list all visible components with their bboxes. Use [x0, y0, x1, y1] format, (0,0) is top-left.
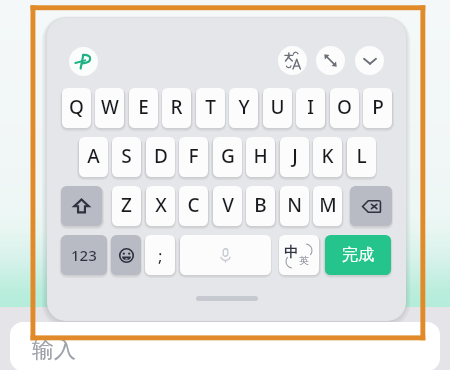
staticText: N	[287, 192, 302, 218]
button[interactable]: Resize keyboard	[316, 46, 345, 75]
staticText: T	[205, 94, 216, 120]
button[interactable]: S	[112, 137, 141, 177]
staticText: 123	[71, 245, 97, 265]
button[interactable]: N	[280, 186, 309, 226]
button[interactable]: L	[347, 137, 376, 177]
staticText: E	[138, 94, 149, 120]
staticText: C	[187, 192, 200, 218]
staticText: 完成	[342, 245, 374, 265]
button[interactable]: Hide keyboard	[355, 46, 384, 75]
staticText: D	[154, 143, 168, 169]
staticText: X	[155, 192, 167, 218]
button[interactable]: 输入	[10, 322, 440, 370]
button[interactable]: Q	[62, 88, 91, 128]
button[interactable]: G	[213, 137, 242, 177]
staticText: 英	[299, 254, 309, 267]
button[interactable]: J	[280, 137, 309, 177]
staticText: Z	[121, 192, 132, 218]
button[interactable]: D	[146, 137, 175, 177]
staticText: H	[253, 143, 268, 169]
button[interactable]: O	[330, 88, 359, 128]
staticText: Q	[69, 94, 84, 120]
button[interactable]: M	[313, 186, 342, 226]
button[interactable]: Backspace	[350, 186, 392, 226]
staticText: P	[372, 94, 384, 120]
button[interactable]: ;	[145, 235, 175, 275]
button[interactable]: Translate	[278, 46, 307, 75]
button[interactable]: F	[179, 137, 208, 177]
staticText: ;	[158, 244, 163, 267]
button[interactable]: Switch Chinese English	[279, 235, 319, 275]
staticText: W	[101, 94, 119, 120]
button[interactable]: 完成	[325, 235, 391, 275]
button[interactable]: Y	[229, 88, 258, 128]
staticText: I	[307, 94, 314, 120]
button[interactable]: Space	[180, 235, 271, 275]
staticText: G	[221, 143, 235, 169]
button[interactable]: I	[296, 88, 325, 128]
staticText: K	[321, 143, 334, 169]
button[interactable]: T	[196, 88, 225, 128]
staticText: R	[170, 94, 183, 120]
button[interactable]: V	[213, 186, 242, 226]
staticText: V	[222, 192, 234, 218]
staticText: M	[319, 192, 337, 218]
staticText: 中	[284, 244, 298, 262]
button[interactable]: Shift	[61, 186, 102, 226]
staticText: U	[270, 94, 285, 120]
staticText: O	[337, 94, 352, 120]
staticText: F	[188, 143, 199, 169]
button[interactable]: U	[263, 88, 292, 128]
staticText: Y	[238, 94, 250, 120]
button[interactable]: X	[146, 186, 175, 226]
button[interactable]: R	[162, 88, 191, 128]
button[interactable]: E	[129, 88, 158, 128]
staticText: 输入	[32, 336, 76, 364]
staticText: J	[292, 143, 298, 169]
staticText: B	[254, 192, 267, 218]
button[interactable]: 123	[61, 235, 107, 275]
button[interactable]: Z	[112, 186, 141, 226]
button[interactable]: P	[363, 88, 392, 128]
staticText: A	[87, 143, 100, 169]
button[interactable]: B	[246, 186, 275, 226]
button[interactable]: K	[313, 137, 342, 177]
button[interactable]: A	[79, 137, 108, 177]
button[interactable]: H	[246, 137, 275, 177]
button[interactable]: Emoji	[111, 235, 141, 275]
staticText: S	[121, 143, 132, 169]
button[interactable]: Keyboard logo	[69, 47, 98, 76]
staticText: L	[356, 143, 367, 169]
button[interactable]: C	[179, 186, 208, 226]
button[interactable]: W	[95, 88, 124, 128]
